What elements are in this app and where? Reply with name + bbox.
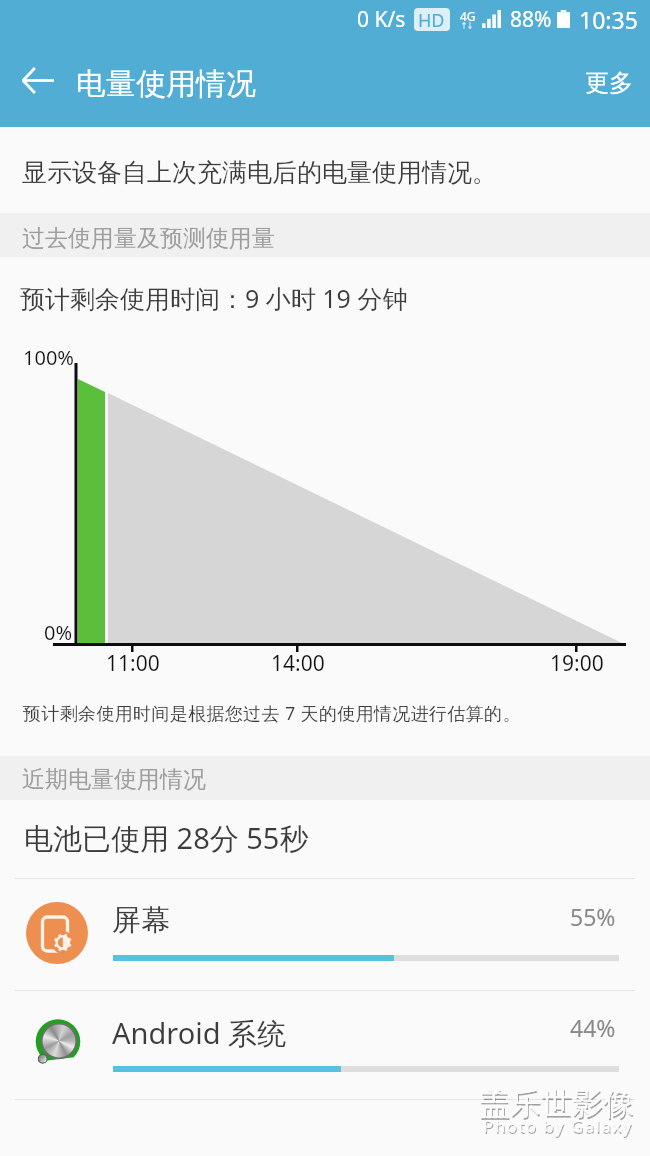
staticText: Photo by Galaxy [483,1114,633,1137]
staticText: 88% [510,5,552,34]
staticText: 4G [460,8,476,24]
staticText: 屏幕 [112,902,170,939]
staticText: 盖乐世影像 [480,1086,635,1125]
staticText: 44% [570,1012,616,1043]
button[interactable]: 屏幕 [0,879,650,990]
staticText: 14:00 [271,649,325,678]
staticText: 19:00 [550,649,604,678]
staticText: 预计剩余使用时间是根据您过去 7 天的使用情况进行估算的。 [23,701,521,726]
button[interactable]: Back [11,54,63,106]
staticText: 电量使用情况 [76,65,256,103]
staticText: 0 K/s [357,5,406,34]
staticText: 显示设备自上次充满电后的电量使用情况。 [22,157,497,188]
staticText: 更多 [585,68,633,98]
staticText: 100% [23,344,74,371]
staticText: 55% [570,901,616,932]
staticText: 过去使用量及预测使用量 [22,224,275,253]
staticText: 11:00 [106,649,160,678]
staticText: Photo by Galaxy [484,1116,634,1139]
staticText: 预计剩余使用时间：9 小时 19 分钟 [20,281,408,315]
staticText: 0% [44,619,73,646]
button[interactable]: Android 系统 [0,990,650,1101]
staticText: 盖乐世影像 [479,1084,634,1123]
staticText: 电池已使用 28分 55秒 [24,818,309,858]
staticText: Android 系统 [112,1013,287,1053]
staticText: 10:35 [579,4,638,35]
button[interactable]: 更多 [567,49,643,119]
staticText: 近期电量使用情况 [22,765,206,794]
staticText: HD [418,8,445,31]
